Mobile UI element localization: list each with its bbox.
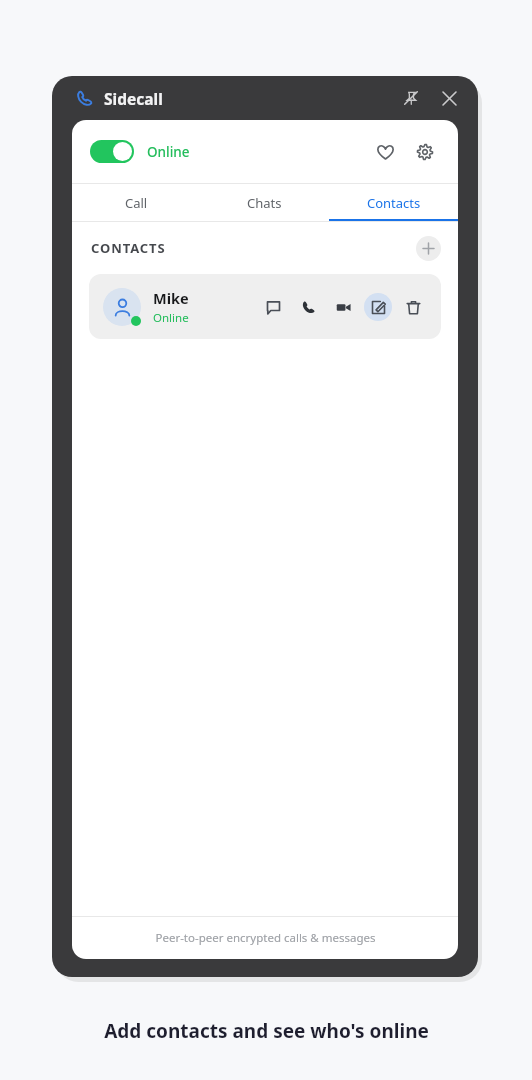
staticText: Contacts (367, 194, 421, 212)
button[interactable]: Call (294, 293, 322, 321)
staticText: Call (125, 194, 148, 212)
staticText: Online (153, 310, 189, 326)
button[interactable]: Chats (200, 184, 329, 221)
staticText: Chats (247, 194, 282, 212)
staticText: Add contacts and see who's online (104, 1018, 429, 1044)
button[interactable]: Online status toggle (90, 140, 134, 163)
staticText: Sidecall (104, 88, 163, 109)
button[interactable]: Close (436, 85, 462, 111)
staticText: CONTACTS (91, 239, 166, 257)
staticText: Mike (153, 288, 189, 308)
staticText: Peer-to-peer encrypted calls & messages (155, 930, 376, 946)
button[interactable]: Call (72, 184, 200, 221)
button[interactable]: Settings (410, 137, 440, 167)
button[interactable]: Contacts (329, 184, 458, 221)
button[interactable]: Add contact (416, 236, 441, 261)
staticText: Online (147, 143, 190, 161)
button[interactable]: Unpin window (398, 85, 424, 111)
button[interactable]: Message (259, 293, 287, 321)
button[interactable]: Video call (329, 293, 357, 321)
button[interactable]: Edit contact (364, 293, 392, 321)
button[interactable]: Mike (89, 274, 441, 339)
button[interactable]: Delete contact (399, 293, 427, 321)
button[interactable]: Favorites (370, 137, 400, 167)
